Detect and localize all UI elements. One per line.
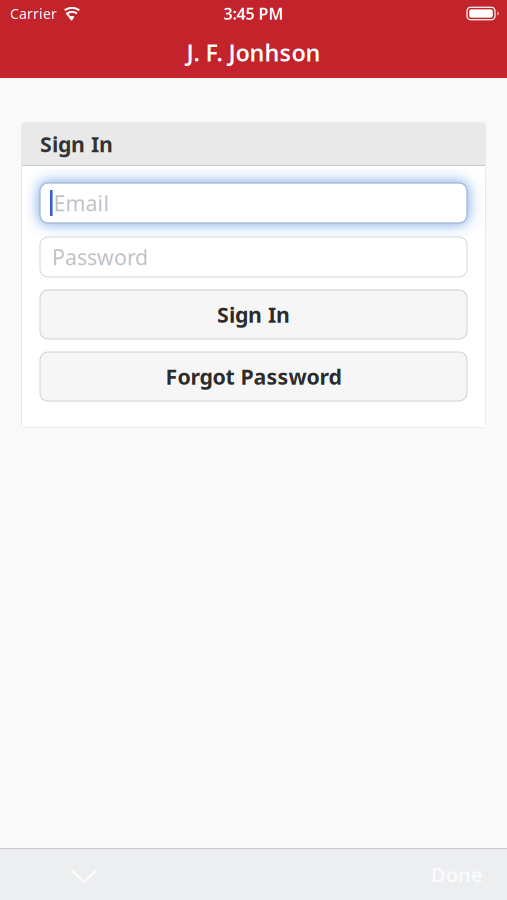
staticText: Password	[52, 242, 148, 272]
staticText: Done	[431, 861, 483, 888]
staticText: Sign In	[40, 129, 113, 159]
staticText: Email	[54, 188, 110, 218]
button[interactable]: Done	[431, 861, 507, 888]
staticText: Carrier	[10, 4, 57, 23]
button[interactable]: Sign In	[40, 290, 467, 339]
staticText: Forgot Password	[165, 362, 341, 391]
button[interactable]: Forgot Password	[40, 352, 467, 401]
staticText: Sign In	[217, 300, 290, 329]
staticText: 3:45 PM	[223, 3, 283, 24]
staticText: J. F. Jonhson	[186, 37, 320, 68]
